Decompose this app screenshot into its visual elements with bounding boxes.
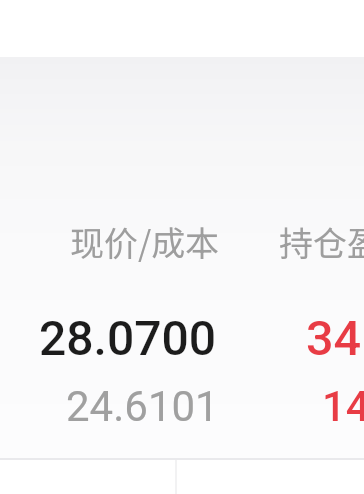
staticText: 28.0700 [39, 310, 217, 366]
staticText: 24.6101 [66, 382, 219, 431]
button[interactable] [0, 57, 364, 458]
button[interactable]: 现价/成本 [70, 217, 220, 266]
button[interactable]: 持仓盈亏 [279, 217, 364, 266]
staticText: 14 [322, 382, 364, 431]
staticText: 34 [306, 310, 362, 367]
